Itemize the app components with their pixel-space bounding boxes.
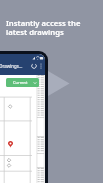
staticText: Current (13, 80, 28, 85)
other: Play video (0, 0, 103, 183)
staticText: General Drawings... (0, 63, 30, 69)
button[interactable]: History (30, 62, 37, 69)
button[interactable]: Current (6, 78, 39, 87)
staticText: Instantly access the latest drawings (6, 18, 81, 37)
button[interactable]: More options (37, 62, 44, 69)
